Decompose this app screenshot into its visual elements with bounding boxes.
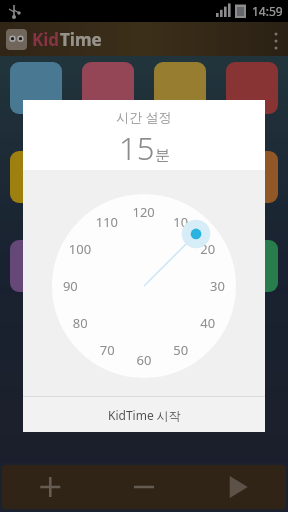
staticText: 14:59 (252, 3, 283, 19)
staticText: Fisher (95, 117, 121, 129)
button[interactable] (10, 240, 62, 295)
button[interactable]: Fisher (82, 62, 134, 129)
button[interactable]: ABC (10, 62, 62, 129)
staticText: 분 (155, 146, 170, 165)
staticText: KidTime 시작 (108, 407, 181, 423)
button[interactable]: Edu (10, 151, 62, 218)
button[interactable] (82, 240, 134, 295)
button[interactable]: Kids (154, 62, 206, 129)
button[interactable]: More options (274, 31, 278, 47)
button[interactable]: Food (226, 62, 278, 129)
staticText: Kid (32, 28, 60, 51)
button[interactable]: Pro (154, 151, 206, 218)
staticText: 시간 설정 (116, 108, 172, 126)
staticText: 15 (119, 127, 155, 169)
staticText: Time (60, 28, 102, 51)
button[interactable] (226, 240, 278, 295)
button[interactable]: Toon (226, 151, 278, 218)
button[interactable]: Minute clock picker (52, 194, 236, 378)
button[interactable]: KidTime 시작 (23, 397, 265, 432)
button[interactable] (154, 240, 206, 295)
button[interactable]: Game (82, 151, 134, 218)
